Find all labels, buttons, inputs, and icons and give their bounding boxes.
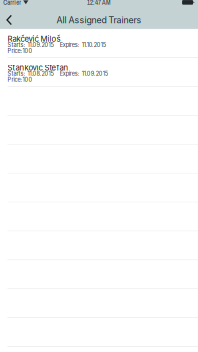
- staticText: Rakčević Miloš: [7, 34, 60, 43]
- staticText: Starts: 11.09.2015: [7, 41, 53, 48]
- staticText: Expires: 11.09.2015: [60, 70, 108, 77]
- button[interactable]: Rakčević Miloš: [0, 29, 198, 57]
- staticText: Price:100: [7, 47, 32, 54]
- button[interactable]: Stanković Stefan: [0, 58, 198, 86]
- staticText: Starts: 11.08.2015: [7, 70, 53, 77]
- staticText: Price:100: [7, 76, 32, 83]
- button[interactable]: Back: [0, 8, 20, 29]
- staticText: Expires: 11.10.2015: [60, 41, 106, 48]
- staticText: Stanković Stefan: [7, 63, 68, 72]
- staticText: Carrier: [3, 0, 21, 7]
- staticText: All Assigned Trainers: [56, 15, 141, 25]
- staticText: 12:47 AM: [87, 0, 111, 7]
